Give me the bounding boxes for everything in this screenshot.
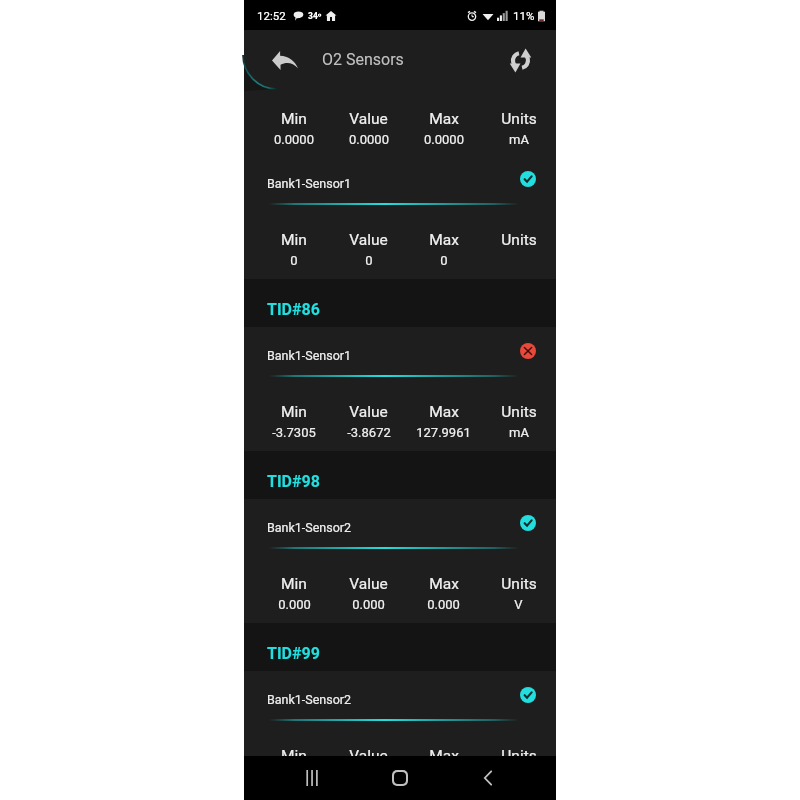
staticText: Bank1-Sensor2 xyxy=(267,520,352,535)
staticText: 12:52 xyxy=(257,9,286,22)
staticText: Bank1-Sensor1 xyxy=(267,176,352,191)
button[interactable]: Back xyxy=(468,758,508,798)
staticText: Units xyxy=(501,575,537,593)
staticText: Value xyxy=(349,747,388,756)
staticText: TID#99 xyxy=(267,644,320,663)
staticText: Units xyxy=(501,403,537,421)
staticText: TID#86 xyxy=(267,300,320,319)
staticText: 0 xyxy=(290,253,298,268)
staticText: 0.000 xyxy=(352,597,385,612)
staticText: Min xyxy=(281,403,307,421)
staticText: Max xyxy=(429,110,459,128)
staticText: Value xyxy=(349,403,388,421)
staticText: Max xyxy=(429,747,459,756)
staticText: 127.9961 xyxy=(416,425,471,440)
staticText: 0 xyxy=(365,253,373,268)
staticText: Units xyxy=(501,747,537,756)
staticText: O2 Sensors xyxy=(322,50,404,69)
button[interactable]: Bank1-Sensor2 xyxy=(244,499,556,623)
staticText: -3.8672 xyxy=(347,425,391,440)
button[interactable]: TID#98 xyxy=(244,451,556,499)
staticText: Min xyxy=(281,231,307,249)
button[interactable]: Back xyxy=(265,40,305,80)
staticText: Units xyxy=(501,231,537,249)
button[interactable]: Bank1-Sensor1 xyxy=(244,158,556,279)
staticText: 0.0000 xyxy=(349,132,389,147)
staticText: Units xyxy=(501,110,537,128)
staticText: mA xyxy=(509,425,529,440)
staticText: Bank1-Sensor2 xyxy=(267,692,352,707)
button[interactable]: Bank1-Sensor2 xyxy=(244,671,556,756)
staticText: Value xyxy=(349,110,388,128)
staticText: Min xyxy=(281,575,307,593)
button[interactable]: Home xyxy=(380,758,420,798)
staticText: Max xyxy=(429,403,459,421)
staticText: Value xyxy=(349,231,388,249)
staticText: 0 xyxy=(440,253,448,268)
staticText: 11% xyxy=(513,9,535,22)
staticText: Bank1-Sensor1 xyxy=(267,348,352,363)
staticText: mA xyxy=(509,132,529,147)
staticText: Min xyxy=(281,747,307,756)
staticText: Min xyxy=(281,110,307,128)
button[interactable]: Bank1-Sensor1 xyxy=(244,327,556,451)
staticText: 0.0000 xyxy=(424,132,464,147)
staticText: 0.000 xyxy=(278,597,311,612)
button[interactable]: TID#99 xyxy=(244,623,556,671)
staticText: 0.0000 xyxy=(274,132,314,147)
button[interactable]: TID#86 xyxy=(244,279,556,327)
button[interactable]: Recent apps xyxy=(292,758,332,798)
staticText: TID#98 xyxy=(267,472,320,491)
staticText: V xyxy=(514,597,523,612)
staticText: Max xyxy=(429,231,459,249)
staticText: Max xyxy=(429,575,459,593)
staticText: 34 xyxy=(308,11,318,21)
staticText: 0.000 xyxy=(427,597,460,612)
staticText: Value xyxy=(349,575,388,593)
button[interactable]: Refresh xyxy=(503,43,537,77)
staticText: -3.7305 xyxy=(272,425,316,440)
